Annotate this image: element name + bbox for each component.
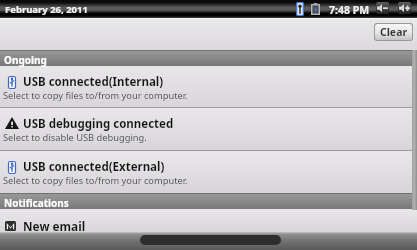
staticText: Clear bbox=[380, 25, 408, 39]
staticText: Select to copy files to/from your comput… bbox=[3, 174, 188, 187]
staticText: Ongoing bbox=[4, 53, 47, 67]
button[interactable]: USB connected(Internal) bbox=[0, 66, 417, 108]
button[interactable]: Volume up bbox=[398, 2, 411, 14]
button[interactable]: New email bbox=[0, 210, 417, 233]
staticText: USB connected(External) bbox=[23, 159, 165, 175]
staticText: Notifications bbox=[4, 196, 69, 210]
staticText: Select to copy files to/from your comput… bbox=[3, 89, 188, 102]
button[interactable]: Close notification shade bbox=[0, 232, 417, 250]
staticText: USB debugging connected bbox=[23, 116, 174, 132]
button[interactable]: USB debugging connected bbox=[0, 108, 417, 150]
staticText: February 26, 2011 bbox=[5, 3, 88, 16]
staticText: USB connected(Internal) bbox=[23, 74, 164, 90]
staticText: New email bbox=[23, 218, 86, 234]
button[interactable]: USB connected(External) bbox=[0, 151, 417, 193]
button[interactable]: Clear bbox=[375, 24, 412, 40]
staticText: Select to disable USB debugging. bbox=[3, 131, 147, 144]
button[interactable]: Volume down bbox=[376, 2, 389, 14]
staticText: 7:48 PM bbox=[329, 3, 370, 17]
